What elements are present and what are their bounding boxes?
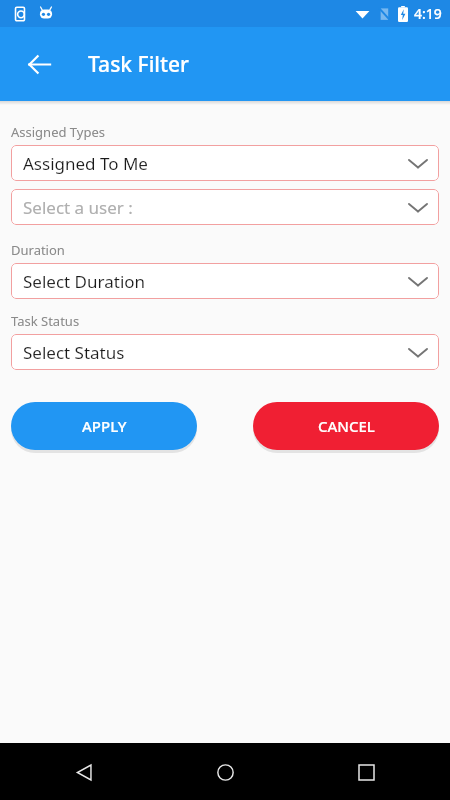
staticText: Duration bbox=[11, 241, 65, 259]
staticText: Task Filter bbox=[88, 50, 189, 79]
button[interactable]: Recent apps bbox=[342, 748, 390, 796]
button[interactable]: Assigned To Me bbox=[11, 145, 439, 181]
staticText: Select a user : bbox=[23, 196, 133, 219]
staticText: Task Status bbox=[11, 312, 80, 330]
staticText: Select Status bbox=[23, 341, 125, 364]
button[interactable]: Back bbox=[60, 748, 108, 796]
button[interactable]: CANCEL bbox=[253, 402, 439, 450]
staticText: Select Duration bbox=[23, 270, 146, 293]
staticText: 4:19 bbox=[414, 4, 442, 23]
staticText: CANCEL bbox=[318, 416, 375, 436]
staticText: Assigned Types bbox=[11, 123, 106, 141]
button[interactable]: Select Duration bbox=[11, 263, 439, 299]
button[interactable]: Select Status bbox=[11, 334, 439, 370]
button[interactable]: Home bbox=[201, 748, 249, 796]
staticText: Assigned To Me bbox=[23, 152, 148, 175]
button[interactable]: APPLY bbox=[11, 402, 197, 450]
button[interactable]: Back bbox=[15, 40, 63, 88]
staticText: APPLY bbox=[82, 416, 127, 436]
button[interactable]: Select a user : bbox=[11, 189, 439, 225]
